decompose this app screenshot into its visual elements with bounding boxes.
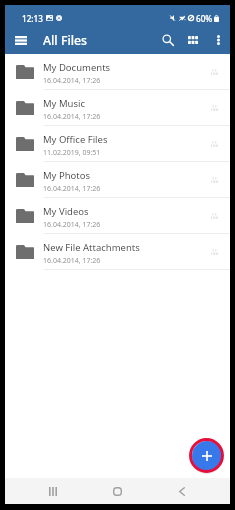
- button[interactable]: Shared with: [208, 138, 221, 151]
- button[interactable]: My Music: [5, 90, 230, 126]
- button[interactable]: Shared with: [208, 210, 221, 223]
- button[interactable]: Shared with: [208, 246, 221, 259]
- staticText: 16.04.2014, 17:26: [43, 184, 101, 194]
- button[interactable]: Search: [157, 29, 179, 51]
- button[interactable]: Shared with: [208, 174, 221, 187]
- button[interactable]: Navigation menu: [10, 29, 32, 51]
- button[interactable]: Grid view: [182, 29, 204, 51]
- button[interactable]: My Office Files: [5, 126, 230, 162]
- button[interactable]: More options: [209, 31, 227, 49]
- staticText: My Music: [43, 97, 85, 110]
- staticText: All Files: [43, 32, 88, 49]
- button[interactable]: Add: [192, 441, 222, 471]
- staticText: 12:13: [22, 13, 43, 24]
- staticText: My Documents: [43, 61, 111, 74]
- staticText: 11.02.2019, 09:51: [43, 148, 101, 158]
- button[interactable]: My Photos: [5, 162, 230, 198]
- staticText: New File Attachments: [43, 241, 140, 254]
- button[interactable]: New File Attachments: [5, 234, 230, 270]
- button[interactable]: Back: [171, 478, 193, 504]
- button[interactable]: Home: [106, 478, 128, 504]
- staticText: 16.04.2014, 17:26: [43, 256, 101, 266]
- button[interactable]: My Documents: [5, 54, 230, 90]
- staticText: 16.04.2014, 17:26: [43, 112, 101, 122]
- staticText: My Photos: [43, 169, 91, 182]
- button[interactable]: Shared with: [208, 102, 221, 115]
- button[interactable]: Shared with: [208, 66, 221, 79]
- staticText: 16.04.2014, 17:26: [43, 76, 101, 86]
- staticText: My Videos: [43, 205, 89, 218]
- button[interactable]: My Videos: [5, 198, 230, 234]
- button[interactable]: Recent apps: [42, 478, 64, 504]
- staticText: 16.04.2014, 17:26: [43, 220, 101, 230]
- staticText: 60%: [196, 13, 213, 24]
- staticText: My Office Files: [43, 133, 108, 146]
